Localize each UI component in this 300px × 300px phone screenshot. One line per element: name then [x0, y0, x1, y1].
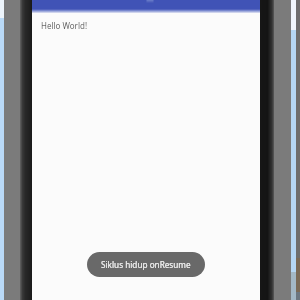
button[interactable]: Siklus hidup onResume	[87, 252, 205, 277]
staticText: Siklus hidup onResume	[101, 259, 191, 270]
staticText: Hello World!	[41, 20, 88, 31]
